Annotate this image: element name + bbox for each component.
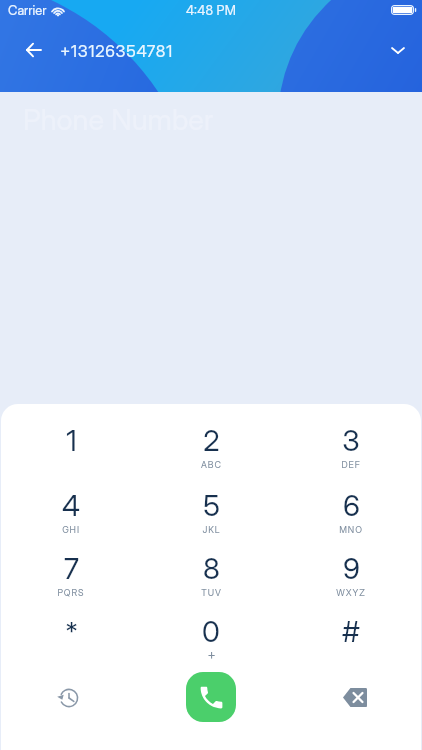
button[interactable]: 7 [25,552,117,608]
button[interactable]: Call [186,672,236,722]
staticText: Carrier [8,2,47,18]
staticText: 6 [343,488,360,523]
staticText: + [207,646,216,662]
staticText: 7 [64,551,79,586]
button[interactable]: Backspace [332,674,378,720]
staticText: MNO [339,524,363,535]
button[interactable]: 2 [165,424,257,480]
staticText: 5 [203,488,220,523]
button[interactable]: +13126354781 [60,41,173,61]
button[interactable]: 1 [25,424,117,480]
button[interactable]: 6 [305,489,397,545]
staticText: ABC [201,459,222,470]
button[interactable]: Collapse [381,33,415,67]
staticText: 3 [342,423,360,458]
staticText: GHI [62,524,80,535]
button[interactable]: Back [16,33,50,67]
button[interactable]: 4 [25,489,117,545]
button[interactable]: 9 [305,552,397,608]
staticText: TUV [201,587,222,598]
button[interactable]: 0 [165,615,257,671]
staticText: DEF [341,459,361,470]
button[interactable]: Call history [46,675,92,721]
staticText: 4:48 PM [0,2,422,18]
button[interactable]: 5 [165,489,257,545]
button[interactable]: # [305,615,397,671]
button[interactable]: * [25,615,117,671]
staticText: 2 [203,423,220,458]
staticText: JKL [202,524,221,535]
staticText: 8 [203,551,220,586]
staticText: 4 [62,488,80,523]
staticText: PQRS [57,587,85,598]
staticText: 9 [343,551,360,586]
button[interactable]: 3 [305,424,397,480]
staticText: * [65,616,78,647]
staticText: # [342,614,360,649]
button[interactable]: 8 [165,552,257,608]
staticText: 1 [66,423,77,458]
staticText: WXYZ [336,587,366,598]
staticText: 0 [202,614,220,649]
